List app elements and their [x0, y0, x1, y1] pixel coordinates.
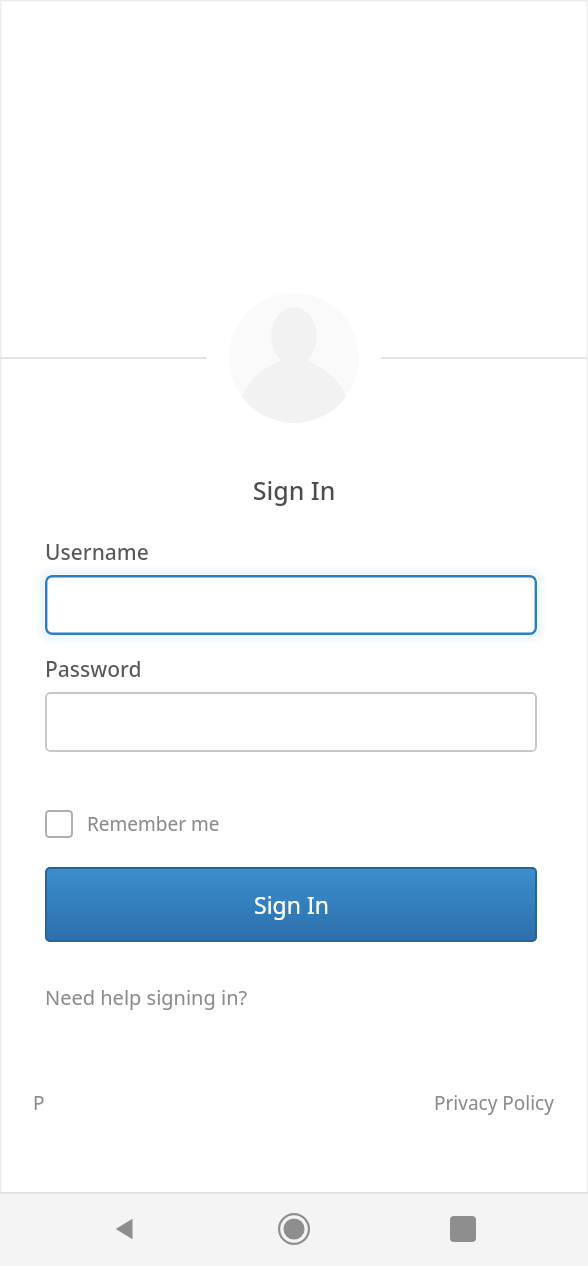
staticText: Sign In [0, 473, 588, 507]
staticText: Need help signing in? [45, 984, 248, 1011]
button[interactable]: Privacy Policy [434, 1090, 554, 1116]
staticText: Username [45, 538, 149, 567]
button[interactable] [45, 575, 537, 635]
staticText: P [33, 1090, 45, 1116]
staticText: Privacy Policy [434, 1090, 554, 1116]
staticText: Remember me [87, 811, 220, 837]
button[interactable]: Recent apps [435, 1201, 491, 1257]
button[interactable]: Need help signing in? [45, 984, 248, 1011]
button[interactable] [45, 692, 537, 752]
staticText: Password [45, 655, 142, 684]
button[interactable]: Remember me [45, 809, 220, 839]
button[interactable]: Home [266, 1201, 322, 1257]
staticText: Sign In [254, 889, 329, 920]
button[interactable]: P [33, 1090, 45, 1116]
button[interactable]: Sign In [45, 867, 537, 942]
button[interactable]: Back [97, 1201, 153, 1257]
